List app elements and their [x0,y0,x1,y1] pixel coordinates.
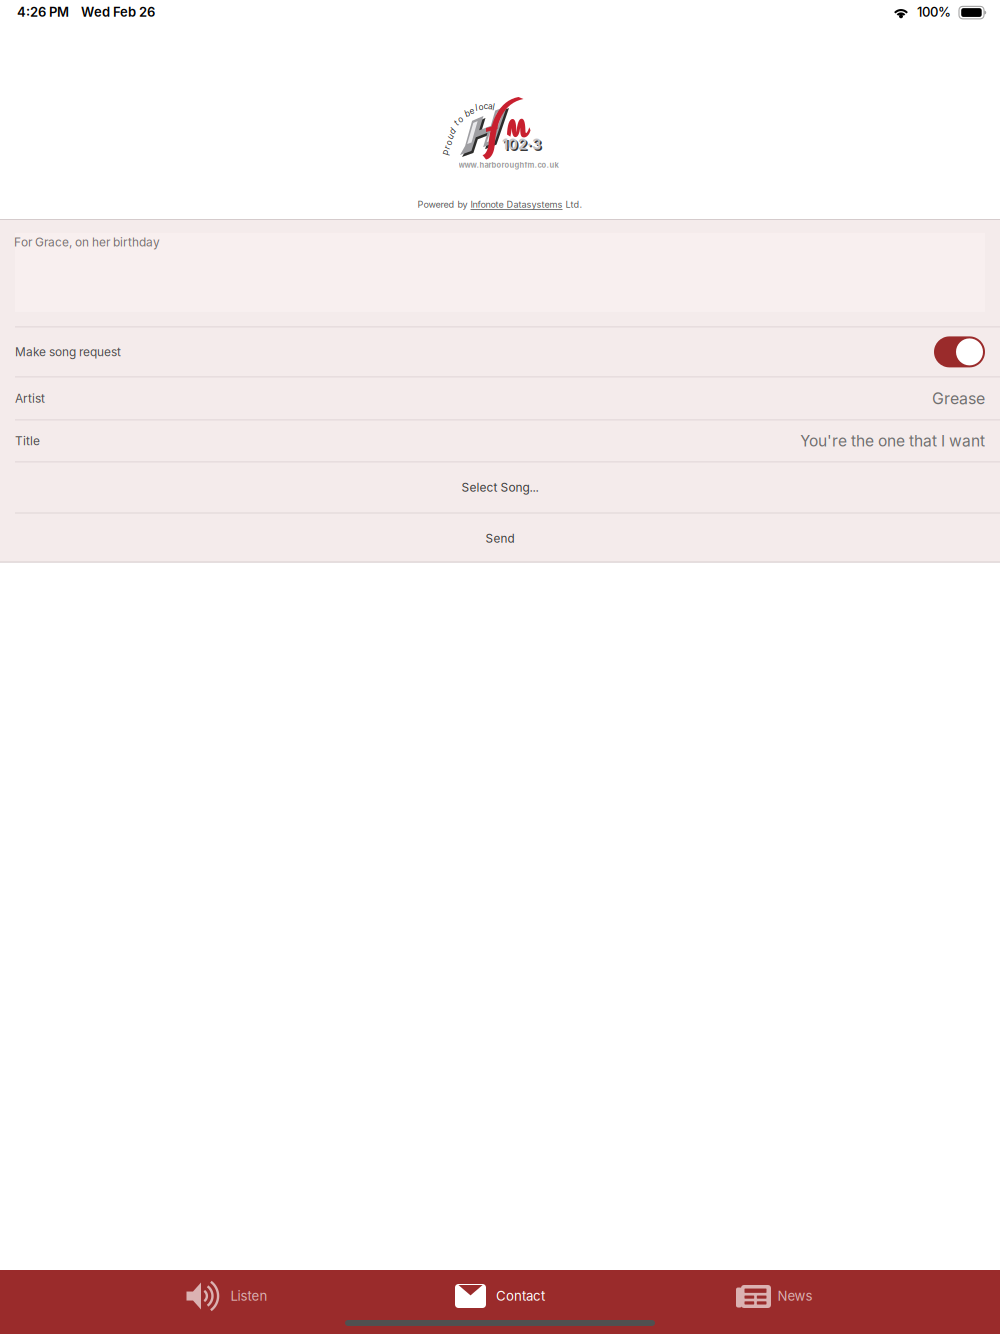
staticText: d [450,126,455,136]
staticText: t [455,118,458,128]
staticText: For Grace, on her birthday [14,235,160,249]
staticText: u [448,131,453,141]
staticText: a [488,101,493,111]
button[interactable]: News [688,1274,858,1318]
staticText: Select Song... [461,480,538,495]
button[interactable]: Title [0,420,1000,461]
staticText: o [458,114,463,124]
staticText: Title [15,434,40,448]
staticText: 102·3 [502,135,541,153]
staticText: P [444,148,449,158]
staticText: l [492,102,494,112]
button[interactable]: Contact [415,1274,585,1318]
button[interactable]: Select Song... [0,462,1000,513]
staticText: Grease [932,389,985,408]
staticText: e [469,106,474,116]
staticText: l [475,103,477,113]
staticText: Listen [230,1288,267,1304]
staticText: News [777,1288,812,1304]
staticText: Ltd. [562,199,582,210]
staticText: 100% [917,4,951,20]
staticText: Artist [15,391,45,406]
button[interactable]: Artist [0,377,1000,419]
staticText: Infonote Datasystems [470,199,562,210]
staticText: Wed Feb 26 [81,4,155,20]
button[interactable]: Listen [142,1274,312,1318]
staticText: 4:26 PM [17,4,69,20]
staticText: o [446,137,451,147]
button[interactable]: Make song request [0,327,1000,376]
button[interactable]: Send [0,513,1000,564]
staticText: c [483,101,488,111]
staticText: You're the one that I want [800,431,985,450]
staticText: b [465,108,470,118]
staticText: Make song request [15,345,121,359]
staticText: o [478,102,483,112]
staticText: Powered by [417,199,470,210]
staticText: Send [485,531,514,546]
staticText: 102·3 [503,137,542,154]
button[interactable]: Infonote Datasystems [470,199,562,210]
staticText: www.harboroughfm.co.uk [458,160,558,170]
staticText: Contact [496,1288,545,1304]
staticText: r [445,142,448,152]
